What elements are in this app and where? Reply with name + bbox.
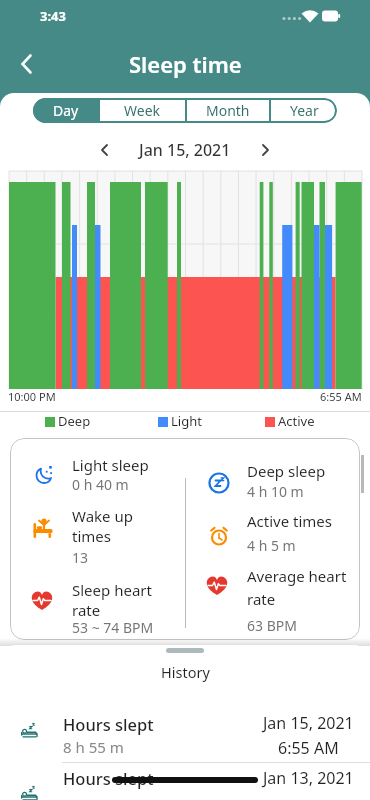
staticText: Jan 13, 2021 [263, 767, 354, 789]
staticText: 6:55 AM [320, 389, 362, 404]
staticText: Jan 15, 2021 [139, 139, 231, 161]
staticText: Deep [58, 412, 91, 430]
staticText: History [161, 662, 210, 682]
button[interactable]: Year [271, 98, 337, 123]
staticText: 0 h 40 m [72, 475, 129, 494]
staticText: 6:55 AM [278, 737, 339, 759]
button[interactable] [250, 138, 280, 162]
staticText: Week [124, 101, 161, 120]
staticText: 10:00 PM [8, 389, 56, 404]
staticText: 53 ~ 74 BPM [72, 618, 154, 637]
staticText: 63 BPM [247, 616, 297, 635]
staticText: times [72, 526, 111, 546]
staticText: Deep sleep [247, 461, 326, 481]
staticText: Hours slept [63, 767, 154, 789]
staticText: 4 h 5 m [247, 536, 296, 555]
staticText: Active times [247, 511, 333, 531]
staticText: rate [247, 589, 276, 609]
button[interactable] [90, 138, 120, 162]
staticText: Day [53, 101, 79, 120]
staticText: 13 [72, 548, 89, 567]
button[interactable] [0, 703, 370, 751]
staticText: Hours slept [63, 713, 154, 735]
staticText: Light [171, 412, 202, 430]
button[interactable] [0, 35, 56, 93]
staticText: 3:43 [40, 7, 66, 25]
staticText: rate [72, 600, 101, 620]
button[interactable]: Week [100, 98, 185, 123]
staticText: Sleep heart [72, 580, 152, 600]
button[interactable]: Month [187, 98, 269, 123]
staticText: Wake up [72, 506, 133, 526]
button[interactable] [0, 764, 370, 800]
staticText: Average heart [247, 566, 347, 586]
button[interactable]: Day [33, 98, 98, 123]
staticText: Sleep time [129, 49, 242, 79]
staticText: 8 h 55 m [63, 737, 124, 757]
staticText: Light sleep [72, 455, 149, 475]
staticText: Jan 15, 2021 [263, 712, 354, 734]
staticText: Month [206, 101, 250, 120]
staticText: Year [290, 101, 319, 120]
staticText: Active [278, 412, 315, 430]
staticText: 4 h 10 m [247, 482, 304, 501]
